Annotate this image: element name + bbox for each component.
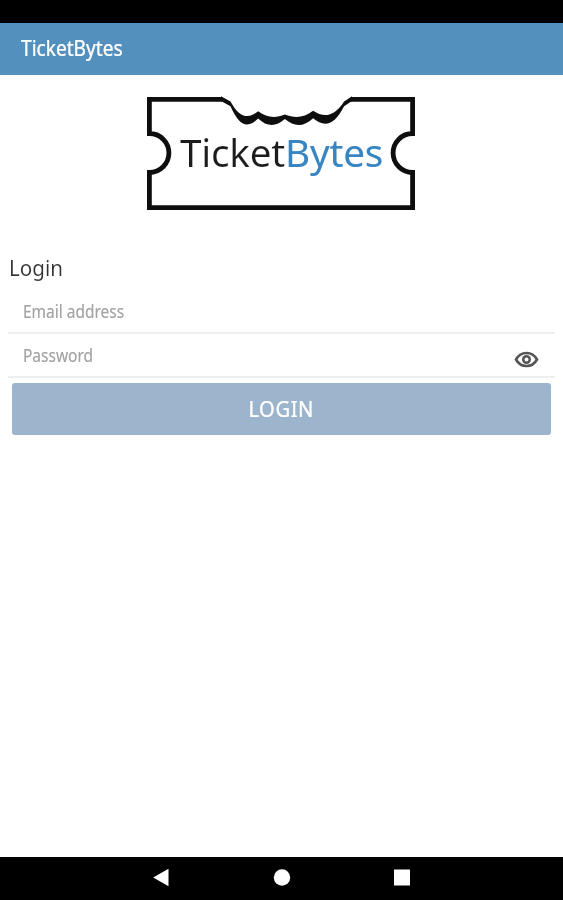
staticText: Password [23, 343, 93, 368]
staticText: TicketBytes [180, 125, 384, 178]
button[interactable]: Home [260, 856, 304, 899]
staticText: Login [9, 254, 64, 283]
staticText: TicketBytes [21, 34, 123, 63]
button[interactable]: Email address [0, 296, 563, 332]
button[interactable]: Back [139, 856, 183, 899]
button[interactable]: Show password [511, 344, 541, 374]
button[interactable]: Password [0, 340, 563, 377]
button[interactable]: Recents [380, 856, 424, 899]
staticText: Email address [23, 299, 124, 324]
staticText: LOGIN [248, 395, 315, 424]
button[interactable]: LOGIN [12, 383, 551, 435]
